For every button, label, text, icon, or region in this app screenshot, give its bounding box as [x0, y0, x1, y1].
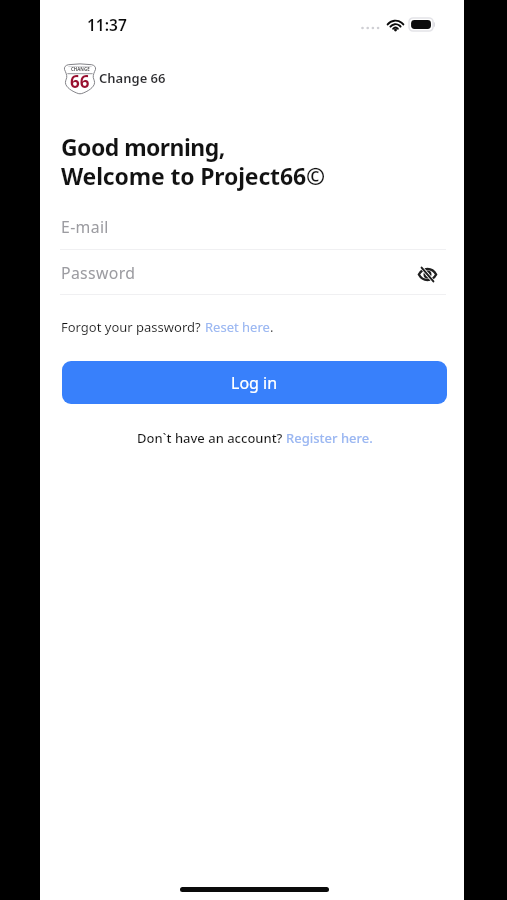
staticText: Welcome to Project66©	[61, 160, 325, 191]
button[interactable]: Log in	[62, 361, 447, 404]
staticText: Register here.	[286, 429, 373, 447]
button[interactable]	[60, 206, 446, 240]
staticText: Password	[61, 262, 136, 284]
button[interactable]	[60, 252, 446, 286]
staticText: 11:37	[87, 14, 127, 35]
staticText: CHANGE	[71, 66, 90, 72]
staticText: .	[270, 318, 274, 336]
button[interactable]: Show password	[413, 260, 441, 288]
staticText: Good morning,	[61, 131, 225, 162]
button[interactable]: Forgot your password?	[57, 314, 278, 340]
button[interactable]: CHANGE	[60, 60, 173, 97]
staticText: Reset here	[205, 318, 270, 336]
staticText: 66	[70, 70, 90, 93]
staticText: E-mail	[61, 216, 109, 238]
staticText: Don`t have an account?	[137, 429, 286, 447]
staticText: Forgot your password?	[61, 318, 205, 336]
staticText: Change 66	[99, 69, 166, 87]
button[interactable]: Don`t have an account?	[133, 425, 377, 451]
staticText: Log in	[231, 372, 278, 394]
